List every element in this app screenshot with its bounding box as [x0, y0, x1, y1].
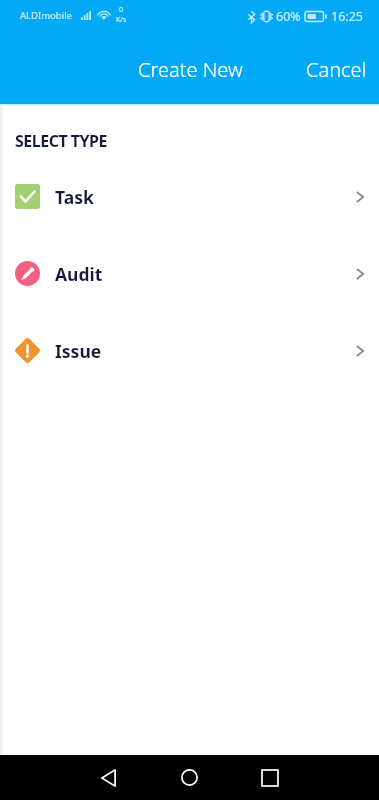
button[interactable]: Back — [81, 755, 136, 800]
button[interactable]: Cancel — [304, 52, 369, 87]
staticText: Audit — [55, 262, 103, 286]
staticText: ALDImobile — [20, 9, 72, 22]
button[interactable]: Recent apps — [242, 755, 297, 800]
button[interactable]: Audit — [0, 235, 379, 312]
button[interactable]: Create New — [136, 52, 245, 87]
staticText: 60% — [276, 8, 301, 25]
button[interactable]: Task — [0, 158, 379, 235]
staticText: SELECT TYPE — [15, 130, 107, 152]
staticText: Issue — [55, 339, 102, 363]
staticText: K/s — [116, 15, 127, 25]
staticText: 16:25 — [331, 8, 363, 25]
staticText: Task — [55, 185, 94, 209]
button[interactable]: Issue — [0, 312, 379, 389]
staticText: Cancel — [306, 56, 367, 83]
button[interactable]: Home — [162, 755, 217, 800]
staticText: Create New — [138, 56, 243, 83]
staticText: 0 — [119, 5, 124, 15]
